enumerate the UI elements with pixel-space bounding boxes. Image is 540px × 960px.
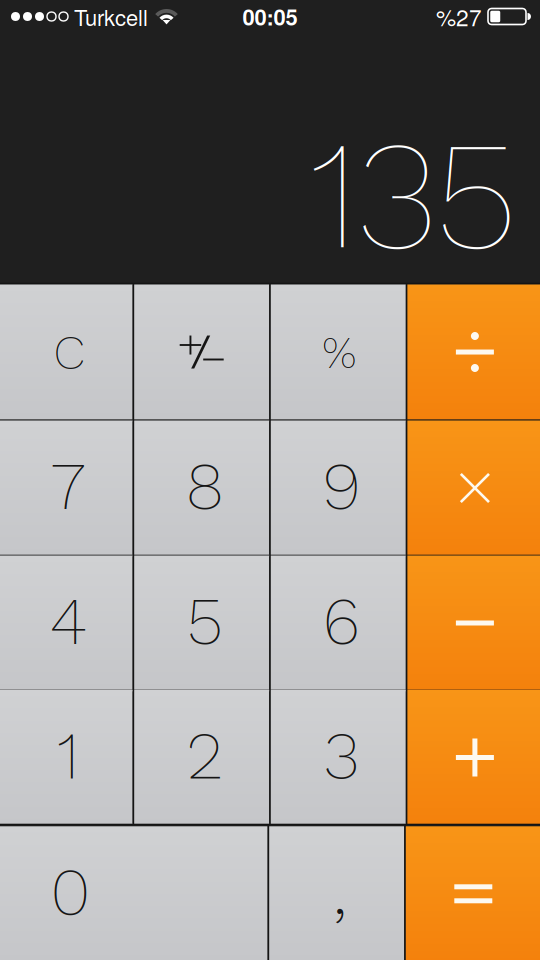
staticText: 2	[187, 716, 223, 795]
staticText: C	[54, 324, 85, 381]
button[interactable]: Plus minus	[134, 284, 269, 419]
button[interactable]: 9	[271, 420, 406, 555]
staticText: 8	[186, 447, 224, 525]
staticText: 135	[309, 106, 516, 284]
staticText: %27	[436, 0, 482, 33]
button[interactable]: 2	[134, 690, 269, 825]
button[interactable]: 4	[0, 555, 133, 690]
staticText: 7	[51, 447, 85, 525]
staticText: ,	[332, 834, 348, 934]
button[interactable]: Plus	[407, 690, 540, 825]
staticText: 3	[324, 716, 359, 795]
staticText: 0	[50, 853, 90, 931]
button[interactable]: 1	[0, 690, 133, 825]
staticText: 4	[50, 582, 87, 660]
staticText: 9	[322, 447, 360, 525]
button[interactable]: C	[0, 284, 133, 419]
staticText: 5	[187, 582, 223, 660]
button[interactable]: Divide	[407, 284, 540, 419]
button[interactable]: 0	[0, 826, 268, 960]
staticText: %	[322, 327, 356, 379]
staticText: 6	[323, 582, 360, 660]
button[interactable]: 8	[134, 420, 269, 555]
button[interactable]: ,	[269, 826, 404, 960]
button[interactable]: 6	[271, 555, 406, 690]
button[interactable]: 7	[0, 420, 133, 555]
button[interactable]: 5	[134, 555, 269, 690]
button[interactable]: Equals	[406, 826, 540, 960]
staticText: Turkcell	[74, 1, 148, 32]
staticText: 1	[57, 716, 79, 795]
staticText: 00:05	[242, 1, 297, 32]
button[interactable]: 3	[271, 690, 406, 825]
button[interactable]: Multiply	[407, 420, 540, 555]
button[interactable]: Minus	[407, 555, 540, 690]
button[interactable]: %	[271, 284, 406, 419]
